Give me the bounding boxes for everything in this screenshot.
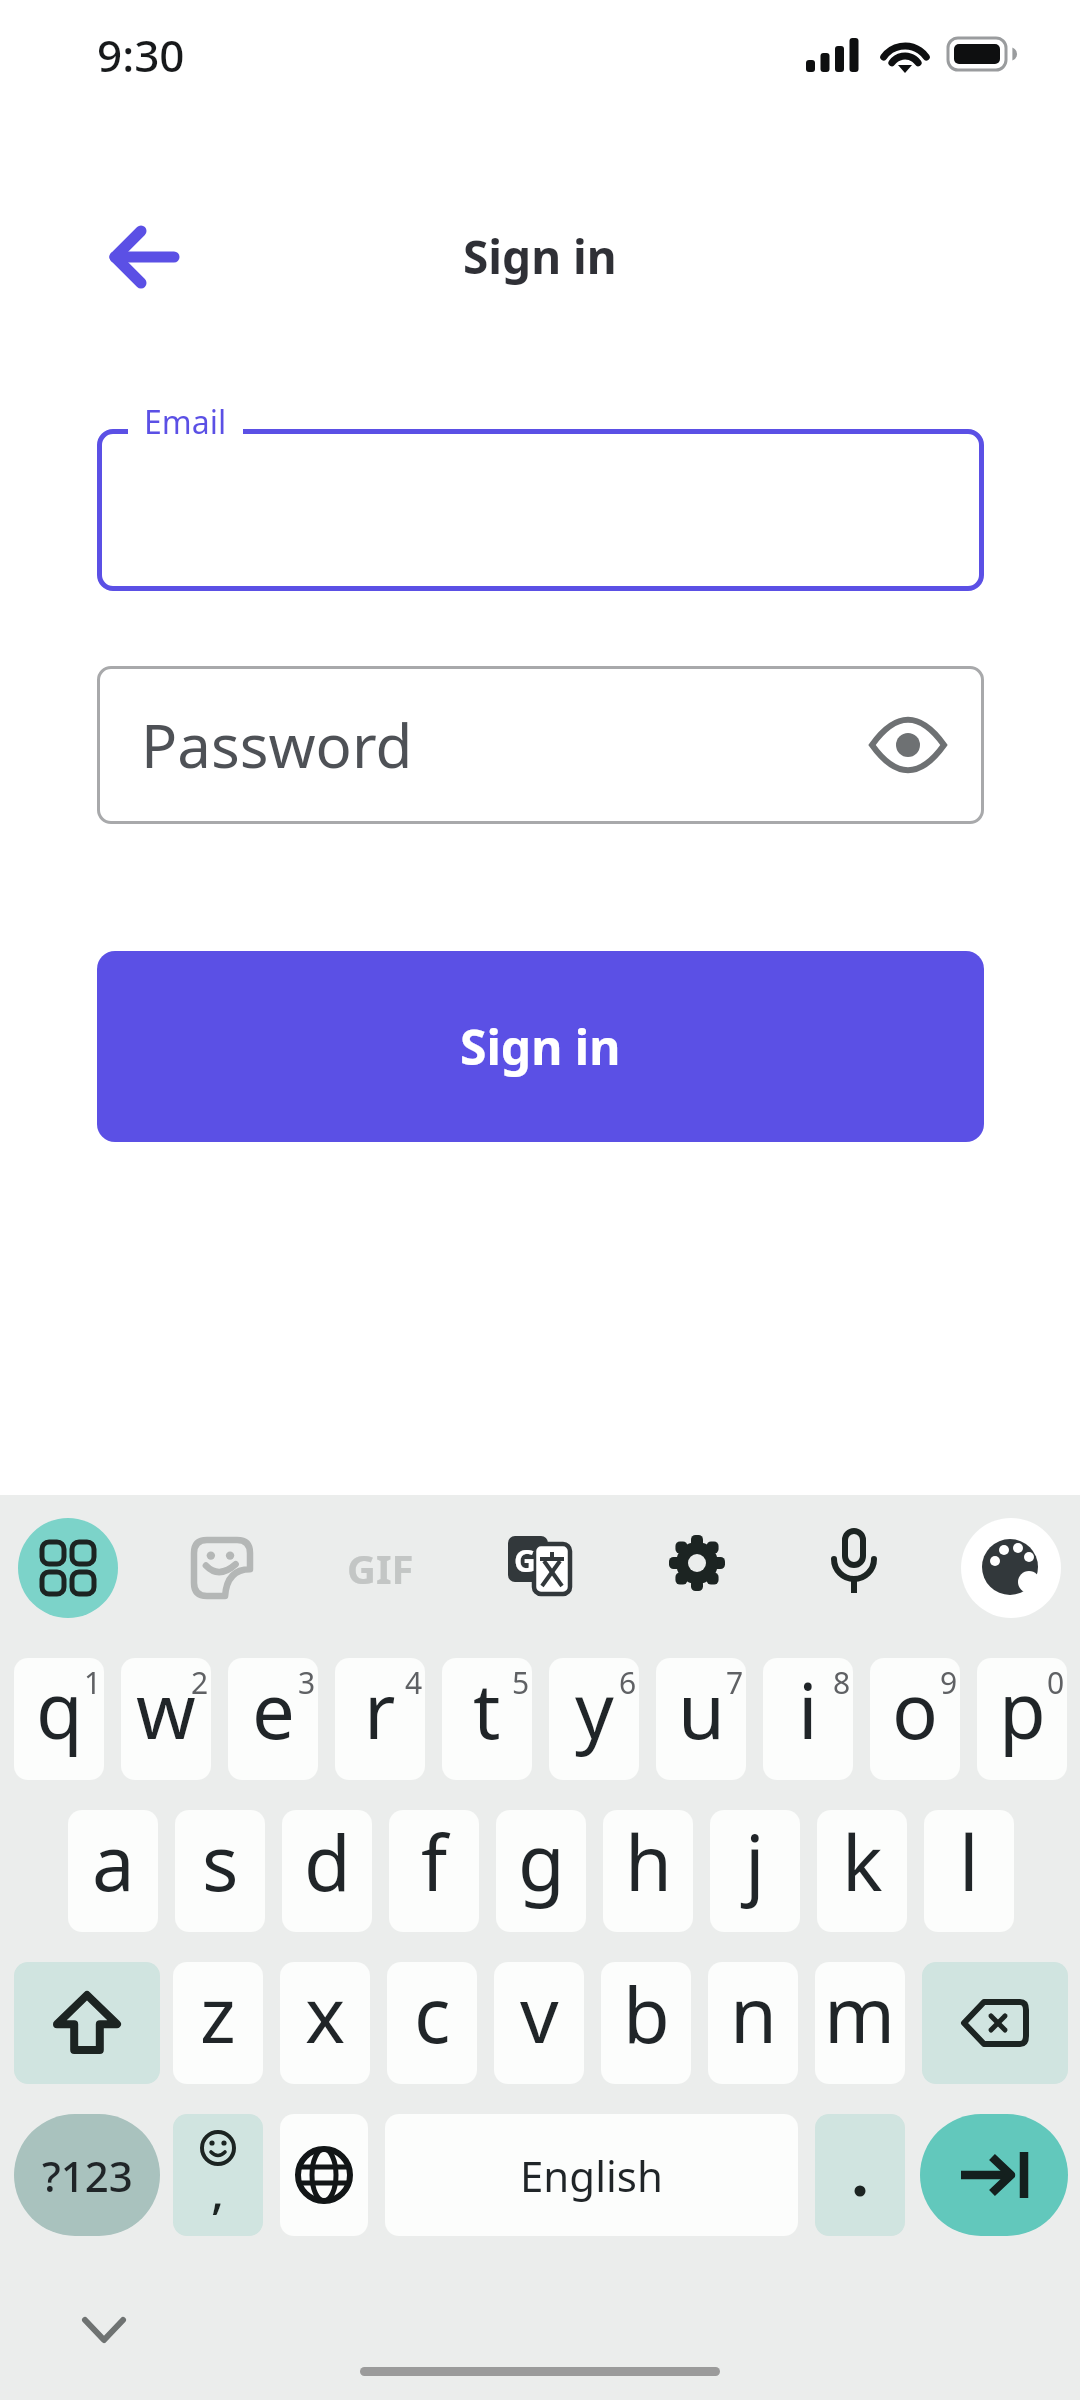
staticText: 9 [940, 1662, 958, 1703]
staticText: Sign in [463, 225, 617, 288]
button[interactable]: ?123 [14, 2114, 160, 2236]
button[interactable]: d [282, 1810, 372, 1932]
button[interactable] [961, 1518, 1061, 1618]
staticText: j [745, 1810, 765, 1914]
staticText: x [305, 1962, 346, 2066]
staticText: p [999, 1658, 1046, 1762]
staticText: r [364, 1658, 396, 1762]
staticText: 2 [191, 1662, 209, 1703]
staticText: G [514, 1540, 536, 1581]
button[interactable]: c [387, 1962, 477, 2084]
staticText: i [798, 1658, 818, 1762]
button[interactable]: k [817, 1810, 907, 1932]
staticText: 4 [405, 1662, 423, 1703]
button[interactable]: h [603, 1810, 693, 1932]
button[interactable] [18, 1518, 118, 1618]
button[interactable] [190, 1536, 254, 1600]
staticText: m [824, 1962, 896, 2066]
button[interactable]: g [496, 1810, 586, 1932]
button[interactable]: z [173, 1962, 263, 2084]
staticText: z [200, 1962, 236, 2066]
button[interactable]: Password [97, 666, 984, 824]
staticText: n [730, 1962, 777, 2066]
staticText: 5 [512, 1662, 530, 1703]
staticText: ?123 [42, 2147, 133, 2204]
staticText: o [892, 1658, 938, 1762]
button[interactable]: l [924, 1810, 1014, 1932]
button[interactable]: j [710, 1810, 800, 1932]
staticText: d [304, 1810, 351, 1914]
button[interactable]: English [385, 2114, 798, 2236]
staticText: 9:30 [97, 25, 185, 85]
staticText: h [625, 1810, 672, 1914]
staticText: g [518, 1810, 565, 1914]
staticText: w [136, 1658, 196, 1762]
staticText: GIF [347, 1541, 414, 1595]
button[interactable] [922, 1962, 1068, 2084]
staticText: q [36, 1658, 83, 1762]
staticText: 1 [84, 1662, 102, 1703]
button[interactable]: a [68, 1810, 158, 1932]
staticText: e [252, 1658, 295, 1762]
button[interactable]: v [494, 1962, 584, 2084]
staticText: Email [144, 400, 227, 444]
button[interactable]: q [14, 1658, 104, 1780]
button[interactable] [815, 2114, 905, 2236]
staticText: Sign in [460, 1014, 621, 1079]
button[interactable]: u [656, 1658, 746, 1780]
staticText: 3 [298, 1662, 316, 1703]
staticText: Password [141, 704, 413, 786]
button[interactable]: b [601, 1962, 691, 2084]
button[interactable] [647, 1513, 747, 1613]
staticText: l [959, 1810, 979, 1914]
button[interactable]: s [175, 1810, 265, 1932]
button[interactable]: y [549, 1658, 639, 1780]
staticText: v [520, 1962, 559, 2066]
staticText: k [842, 1810, 883, 1914]
staticText: f [421, 1810, 448, 1914]
button[interactable]: f [389, 1810, 479, 1932]
staticText: 0 [1047, 1662, 1065, 1703]
button[interactable] [76, 2305, 132, 2355]
button[interactable]: , [173, 2114, 263, 2236]
button[interactable]: w [121, 1658, 211, 1780]
staticText: s [202, 1810, 239, 1914]
button[interactable]: e [228, 1658, 318, 1780]
staticText: English [520, 2147, 663, 2204]
button[interactable]: i [763, 1658, 853, 1780]
staticText: b [623, 1962, 670, 2066]
staticText: c [414, 1962, 451, 2066]
button[interactable] [920, 2114, 1068, 2236]
button[interactable] [280, 2114, 368, 2236]
button[interactable]: n [708, 1962, 798, 2084]
button[interactable] [14, 1962, 160, 2084]
button[interactable]: p [977, 1658, 1067, 1780]
staticText: t [473, 1658, 501, 1762]
staticText: y [575, 1658, 614, 1762]
button[interactable]: r [335, 1658, 425, 1780]
button[interactable]: o [870, 1658, 960, 1780]
button[interactable] [99, 214, 189, 300]
button[interactable] [804, 1513, 904, 1613]
button[interactable]: m [815, 1962, 905, 2084]
button[interactable]: Sign in [97, 951, 984, 1142]
staticText: 7 [726, 1662, 744, 1703]
staticText: 8 [833, 1662, 851, 1703]
staticText: , [211, 2158, 225, 2223]
button[interactable]: t [442, 1658, 532, 1780]
button[interactable]: GIF [330, 1518, 430, 1618]
button[interactable]: G [508, 1536, 570, 1598]
button[interactable]: x [280, 1962, 370, 2084]
staticText: u [678, 1658, 725, 1762]
staticText: 6 [619, 1662, 637, 1703]
button[interactable]: Email [97, 429, 984, 591]
staticText: a [92, 1810, 135, 1914]
